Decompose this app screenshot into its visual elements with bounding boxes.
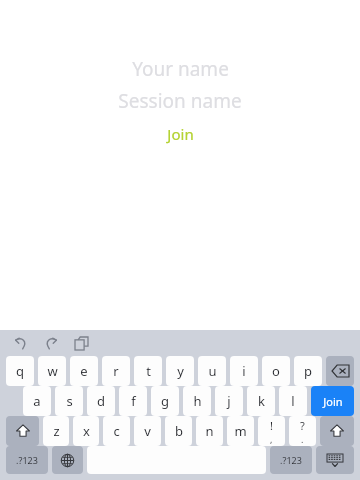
- button[interactable]: p: [294, 356, 322, 386]
- button[interactable]: t: [134, 356, 162, 386]
- button[interactable]: ?: [289, 416, 316, 446]
- staticText: t: [146, 362, 151, 380]
- staticText: f: [131, 392, 136, 410]
- button[interactable]: Redo: [38, 330, 64, 356]
- button[interactable]: r: [102, 356, 130, 386]
- button[interactable]: s: [55, 386, 83, 416]
- button[interactable]: v: [134, 416, 161, 446]
- staticText: c: [113, 422, 120, 440]
- staticText: o: [272, 362, 280, 380]
- button[interactable]: Session name: [0, 86, 360, 116]
- button[interactable]: c: [103, 416, 130, 446]
- button[interactable]: y: [166, 356, 194, 386]
- staticText: z: [53, 422, 60, 440]
- button[interactable]: j: [215, 386, 243, 416]
- button[interactable]: a: [23, 386, 51, 416]
- button[interactable]: f: [119, 386, 147, 416]
- button[interactable]: Join: [0, 122, 360, 146]
- button[interactable]: w: [38, 356, 66, 386]
- staticText: h: [193, 392, 202, 410]
- button[interactable]: x: [73, 416, 99, 446]
- staticText: Session name: [118, 88, 242, 114]
- staticText: ,: [270, 433, 273, 445]
- button[interactable]: !: [258, 416, 285, 446]
- button[interactable]: h: [183, 386, 211, 416]
- staticText: u: [208, 362, 217, 380]
- staticText: x: [83, 422, 90, 440]
- staticText: i: [242, 362, 246, 380]
- staticText: b: [175, 422, 183, 440]
- button[interactable]: n: [196, 416, 223, 446]
- staticText: .?123: [280, 454, 302, 466]
- button[interactable]: m: [227, 416, 254, 446]
- staticText: j: [227, 392, 231, 410]
- button[interactable]: Shift: [6, 416, 39, 446]
- staticText: s: [66, 392, 73, 410]
- staticText: Join: [323, 394, 343, 409]
- button[interactable]: Shift: [320, 416, 354, 446]
- staticText: e: [80, 362, 88, 380]
- staticText: .?123: [16, 454, 38, 466]
- staticText: v: [144, 422, 151, 440]
- staticText: p: [304, 362, 312, 380]
- staticText: y: [177, 362, 184, 380]
- button[interactable]: Backspace: [326, 356, 354, 386]
- staticText: Your name: [132, 56, 229, 82]
- button[interactable]: e: [70, 356, 98, 386]
- button[interactable]: Join: [311, 386, 354, 416]
- staticText: !: [270, 418, 273, 433]
- button[interactable]: o: [262, 356, 290, 386]
- staticText: q: [16, 362, 24, 380]
- button[interactable]: b: [165, 416, 192, 446]
- staticText: .: [301, 433, 304, 445]
- button[interactable]: q: [6, 356, 34, 386]
- button[interactable]: .?123: [6, 446, 48, 474]
- staticText: m: [234, 422, 247, 440]
- button[interactable]: k: [247, 386, 275, 416]
- button[interactable]: Undo: [8, 330, 34, 356]
- staticText: Join: [167, 124, 194, 144]
- button[interactable]: Your name: [0, 54, 360, 84]
- button[interactable]: u: [198, 356, 226, 386]
- staticText: r: [113, 362, 119, 380]
- staticText: n: [205, 422, 214, 440]
- staticText: k: [258, 392, 265, 410]
- button[interactable]: l: [279, 386, 307, 416]
- button[interactable]: i: [230, 356, 258, 386]
- button[interactable]: .?123: [270, 446, 312, 474]
- button[interactable]: d: [87, 386, 115, 416]
- button[interactable]: Change keyboard language: [52, 446, 83, 474]
- button[interactable]: z: [43, 416, 69, 446]
- staticText: d: [97, 392, 105, 410]
- staticText: a: [33, 392, 41, 410]
- button[interactable]: Hide keyboard: [316, 446, 354, 474]
- staticText: l: [291, 392, 295, 410]
- staticText: g: [161, 392, 169, 410]
- button[interactable]: g: [151, 386, 179, 416]
- staticText: ?: [300, 418, 305, 433]
- button[interactable]: Paste: [68, 330, 94, 356]
- staticText: w: [47, 362, 58, 380]
